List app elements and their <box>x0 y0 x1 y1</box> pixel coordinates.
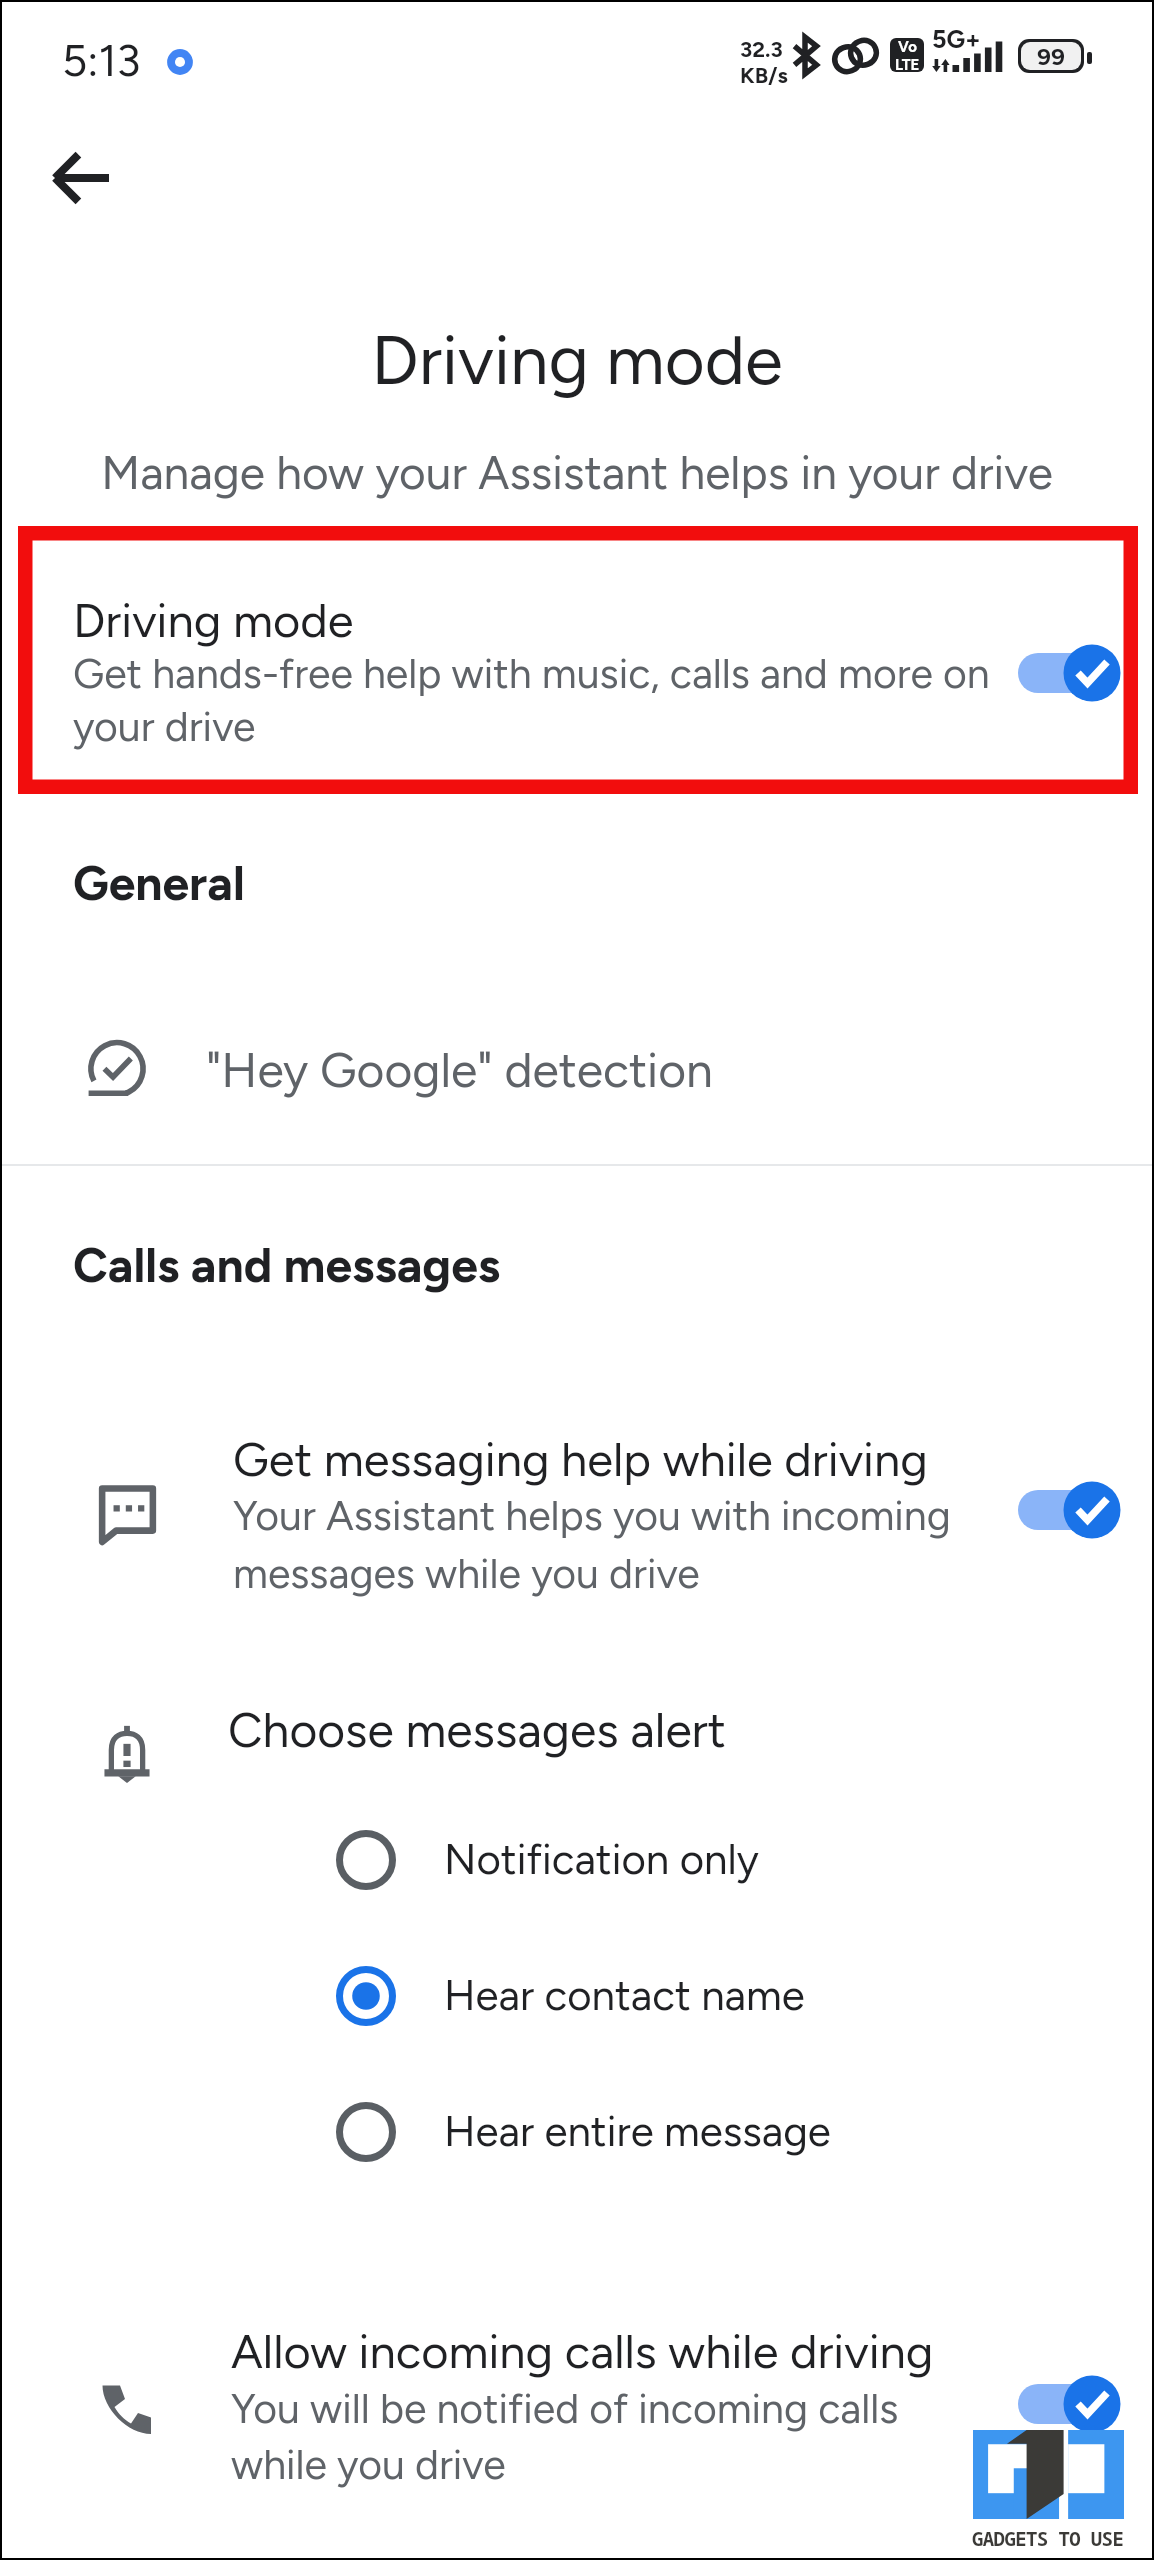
staticText: LTE <box>895 56 920 72</box>
staticText: Choose messages alert <box>228 1701 726 1759</box>
button[interactable]: Notification only <box>302 1794 1002 1930</box>
button[interactable]: Get messaging help while driving <box>2 1422 1152 1622</box>
staticText: Notification only <box>444 1834 759 1884</box>
button[interactable]: Toggle on <box>1018 2374 1122 2434</box>
staticText: You will be notified of incoming calls w… <box>231 2384 941 2490</box>
button[interactable]: Toggle on <box>1018 1480 1122 1540</box>
staticText: 99 <box>1037 42 1065 70</box>
staticText: Hear contact name <box>444 1970 805 2020</box>
staticText: Allow incoming calls while driving <box>231 2323 934 2379</box>
staticText: General <box>73 854 245 912</box>
staticText: Get messaging help while driving <box>233 1431 928 1487</box>
staticText: Hear entire message <box>444 2106 831 2156</box>
button[interactable]: Allow incoming calls while driving <box>2 2317 1152 2527</box>
staticText: Manage how your Assistant helps in your … <box>2 445 1152 500</box>
button[interactable]: Hear entire message <box>302 2066 1002 2202</box>
staticText: Vo <box>898 38 917 56</box>
staticText: Calls and messages <box>73 1236 501 1294</box>
button[interactable]: "Hey Google" detection <box>2 1024 1152 1128</box>
button[interactable]: Toggle on <box>1018 643 1122 703</box>
staticText: 5:13 <box>62 34 141 87</box>
staticText: KB/s <box>740 62 788 88</box>
staticText: 32.3 <box>740 36 783 62</box>
button[interactable]: Back <box>34 130 130 226</box>
staticText: Your Assistant helps you with incoming m… <box>233 1491 973 1598</box>
staticText: Driving mode <box>73 592 354 648</box>
staticText: Driving mode <box>2 318 1152 401</box>
button[interactable]: Hear contact name <box>302 1930 1002 2066</box>
staticText: GADGETS TO USE <box>972 2526 1124 2552</box>
staticText: "Hey Google" detection <box>206 1041 713 1099</box>
staticText: 5G+ <box>932 24 981 54</box>
staticText: Get hands-free help with music, calls an… <box>73 649 993 752</box>
button[interactable]: Driving mode <box>2 542 1152 786</box>
